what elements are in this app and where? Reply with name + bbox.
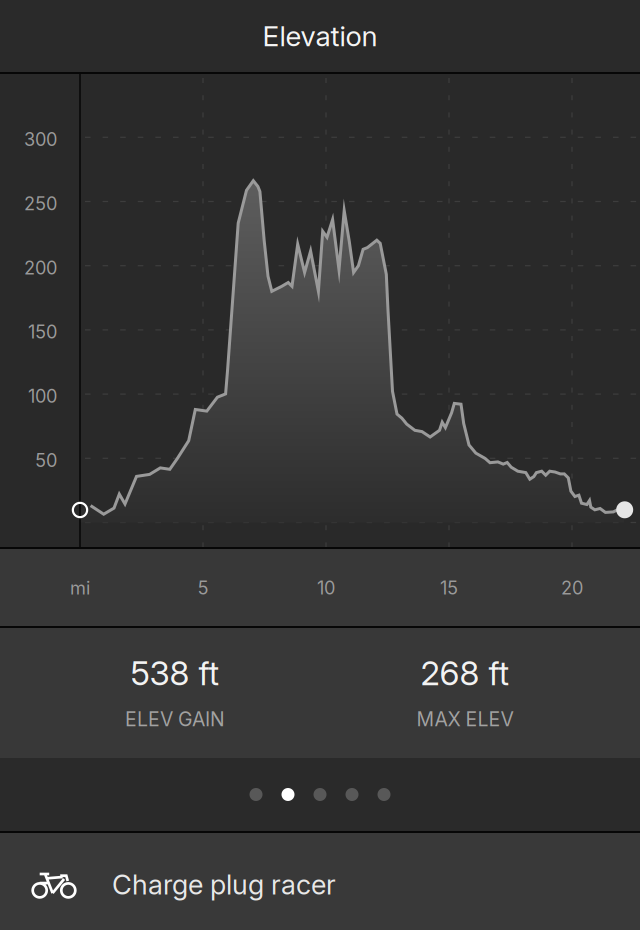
staticText: 250 xyxy=(24,193,57,214)
staticText: 50 xyxy=(35,449,57,471)
staticText: 100 xyxy=(28,385,57,407)
staticText: 538 ft xyxy=(130,653,219,693)
staticText: MAX ELEV xyxy=(416,707,513,731)
button[interactable]: Charge plug racer xyxy=(0,833,640,930)
staticText: 150 xyxy=(28,321,57,343)
staticText: 5 xyxy=(197,577,208,599)
staticText: 15 xyxy=(440,577,458,599)
staticText: 10 xyxy=(317,577,335,599)
staticText: 200 xyxy=(24,257,57,279)
staticText: mi xyxy=(70,577,90,599)
staticText: 268 ft xyxy=(420,653,509,693)
staticText: Charge plug racer xyxy=(112,868,336,901)
staticText: 20 xyxy=(561,577,583,599)
staticText: ELEV GAIN xyxy=(125,707,225,731)
staticText: Elevation xyxy=(262,19,377,53)
staticText: 300 xyxy=(24,128,57,150)
